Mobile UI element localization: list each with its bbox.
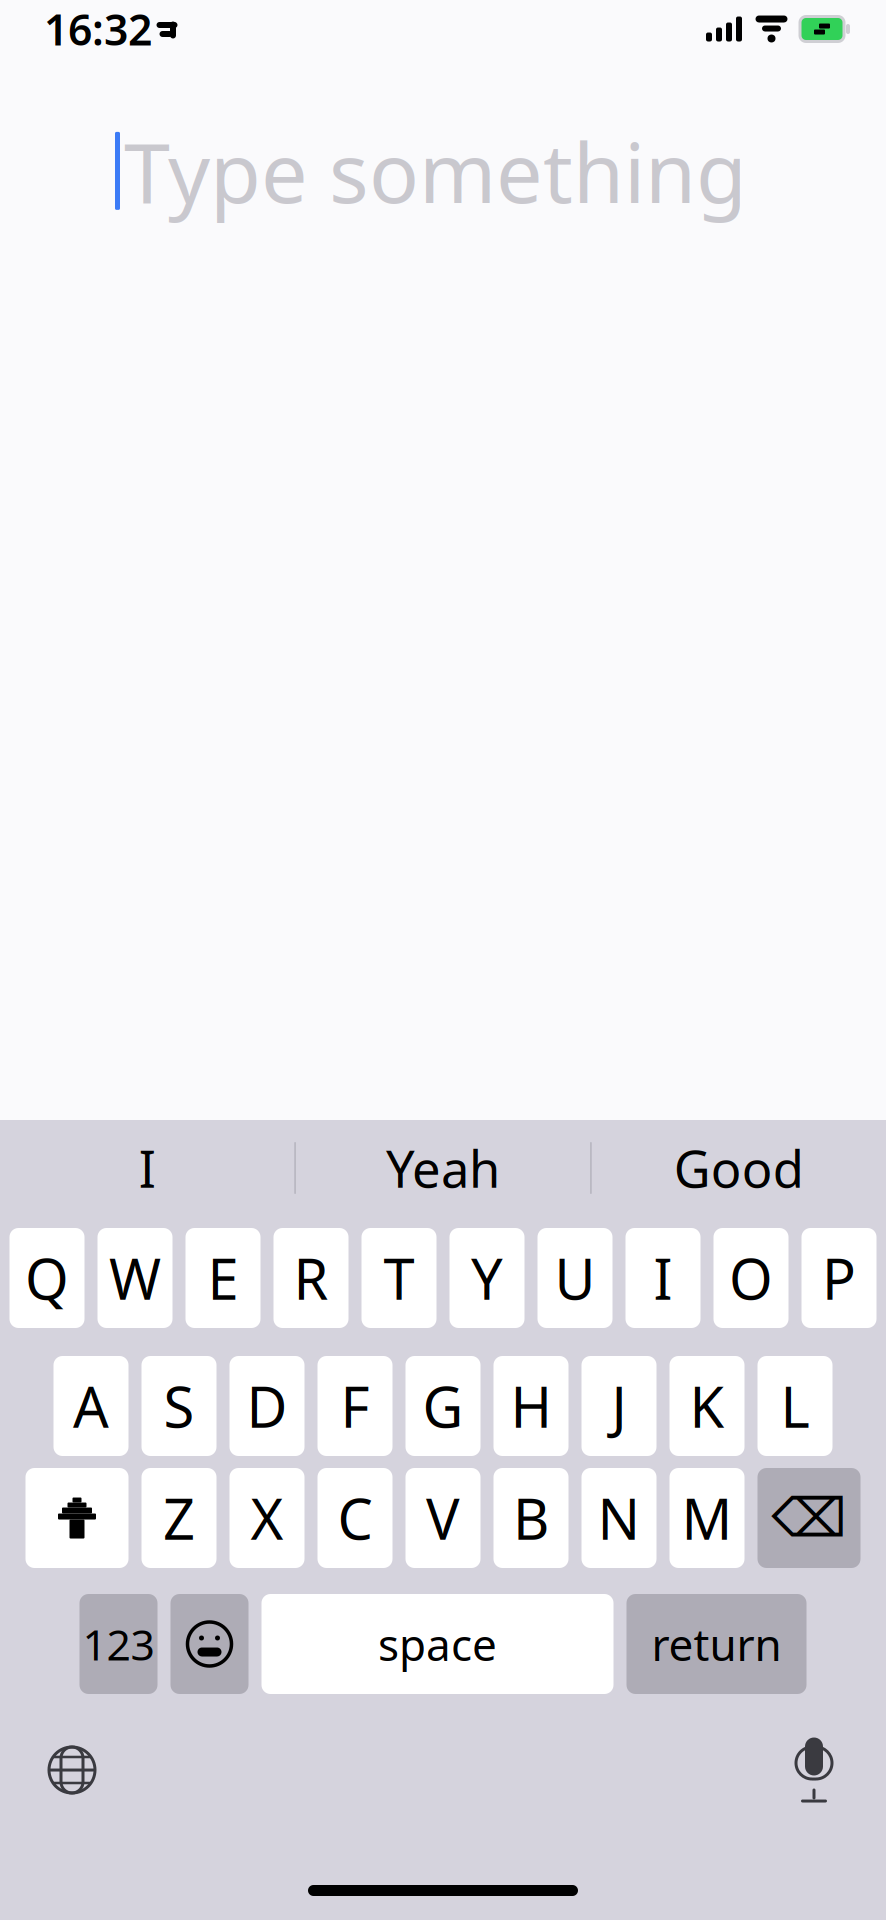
staticText: K [689, 1369, 724, 1443]
button[interactable]: X [229, 1468, 304, 1568]
staticText: D [246, 1369, 287, 1443]
button[interactable]: Yeah [296, 1120, 590, 1216]
staticText: C [337, 1481, 372, 1555]
staticText: A [73, 1369, 109, 1443]
button[interactable]: 123 [79, 1594, 157, 1694]
staticText: W [109, 1241, 161, 1315]
staticText: T [383, 1241, 414, 1315]
staticText: 16:32 [44, 1, 152, 57]
button[interactable]: Z [141, 1468, 216, 1568]
staticText: G [422, 1369, 463, 1443]
button[interactable]: C [317, 1468, 392, 1568]
button[interactable]: Next keyboard [34, 1732, 110, 1808]
staticText: B [513, 1481, 549, 1555]
button[interactable]: U [537, 1228, 612, 1328]
button[interactable]: T [361, 1228, 436, 1328]
staticText: Type something [124, 116, 747, 226]
staticText: I [139, 1134, 156, 1202]
button[interactable]: Delete [757, 1468, 860, 1568]
staticText: ⌫ [771, 1488, 846, 1548]
button[interactable]: P [801, 1228, 876, 1328]
button[interactable]: K [669, 1356, 744, 1456]
staticText: E [207, 1241, 238, 1315]
staticText: O [729, 1241, 773, 1315]
staticText: H [510, 1369, 551, 1443]
staticText: Good [674, 1134, 804, 1202]
button[interactable]: E [185, 1228, 260, 1328]
button[interactable]: L [757, 1356, 832, 1456]
staticText: R [293, 1241, 328, 1315]
button[interactable]: space [261, 1594, 613, 1694]
staticText: L [780, 1369, 809, 1443]
staticText: U [554, 1241, 595, 1315]
staticText: P [822, 1241, 856, 1315]
button[interactable]: return [626, 1594, 806, 1694]
button[interactable]: Shift [25, 1468, 128, 1568]
staticText: N [597, 1481, 640, 1555]
staticText: S [163, 1369, 194, 1443]
button[interactable]: W [97, 1228, 172, 1328]
button[interactable]: J [581, 1356, 656, 1456]
button[interactable]: D [229, 1356, 304, 1456]
button[interactable]: N [581, 1468, 656, 1568]
button[interactable]: Emoji [170, 1594, 248, 1694]
button[interactable]: S [141, 1356, 216, 1456]
button[interactable]: I [0, 1120, 294, 1216]
staticText: Z [163, 1481, 195, 1555]
button[interactable]: R [273, 1228, 348, 1328]
staticText: V [426, 1481, 460, 1555]
staticText: I [653, 1241, 672, 1315]
button[interactable]: O [713, 1228, 788, 1328]
staticText: M [681, 1481, 732, 1555]
button[interactable]: A [53, 1356, 128, 1456]
staticText: F [340, 1369, 369, 1443]
button[interactable]: H [493, 1356, 568, 1456]
button[interactable]: Y [449, 1228, 524, 1328]
staticText: Q [25, 1241, 69, 1315]
button[interactable]: M [669, 1468, 744, 1568]
staticText: Y [471, 1241, 503, 1315]
button[interactable]: Dictate [776, 1730, 852, 1810]
staticText: return [651, 1615, 781, 1673]
button[interactable]: V [405, 1468, 480, 1568]
button[interactable]: I [625, 1228, 700, 1328]
button[interactable]: Q [9, 1228, 84, 1328]
staticText: J [611, 1369, 626, 1443]
button[interactable]: Good [592, 1120, 886, 1216]
button[interactable]: F [317, 1356, 392, 1456]
button[interactable]: G [405, 1356, 480, 1456]
button[interactable]: B [493, 1468, 568, 1568]
staticText: X [250, 1481, 283, 1555]
staticText: Yeah [386, 1134, 500, 1202]
staticText: 123 [82, 1616, 154, 1672]
staticText: space [378, 1615, 497, 1673]
